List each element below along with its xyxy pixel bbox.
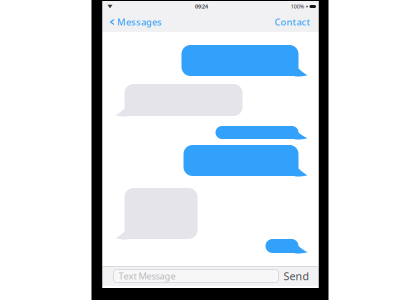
staticText: 100%	[291, 3, 305, 10]
button[interactable]: Send	[283, 269, 309, 282]
staticText: Contact	[274, 16, 310, 28]
staticText: Messages	[117, 16, 162, 28]
staticText: Text Message	[118, 270, 175, 282]
staticText: Send	[283, 269, 309, 283]
button[interactable]: Contact	[268, 12, 316, 32]
staticText: 09:24	[195, 3, 208, 10]
button[interactable]: Text Message	[113, 269, 278, 282]
button[interactable]: Messages	[104, 12, 168, 32]
